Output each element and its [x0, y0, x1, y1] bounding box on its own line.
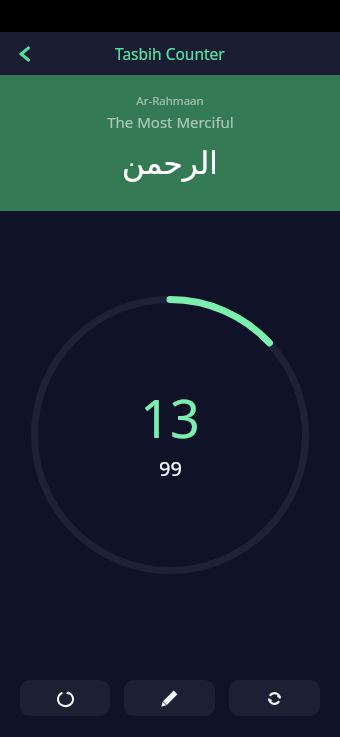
staticText: الرحمن [122, 145, 218, 181]
button[interactable]: Back [8, 37, 42, 71]
staticText: 99 [159, 455, 182, 482]
staticText: 13 [140, 382, 200, 453]
staticText: Tasbih Counter [115, 43, 225, 64]
staticText: Ar-Rahmaan [136, 93, 204, 109]
button[interactable]: Reset [229, 680, 320, 716]
staticText: The Most Merciful [107, 112, 234, 132]
button[interactable]: Increment counter [31, 296, 309, 574]
button[interactable]: Undo [20, 680, 110, 716]
button[interactable]: Edit [124, 680, 215, 716]
